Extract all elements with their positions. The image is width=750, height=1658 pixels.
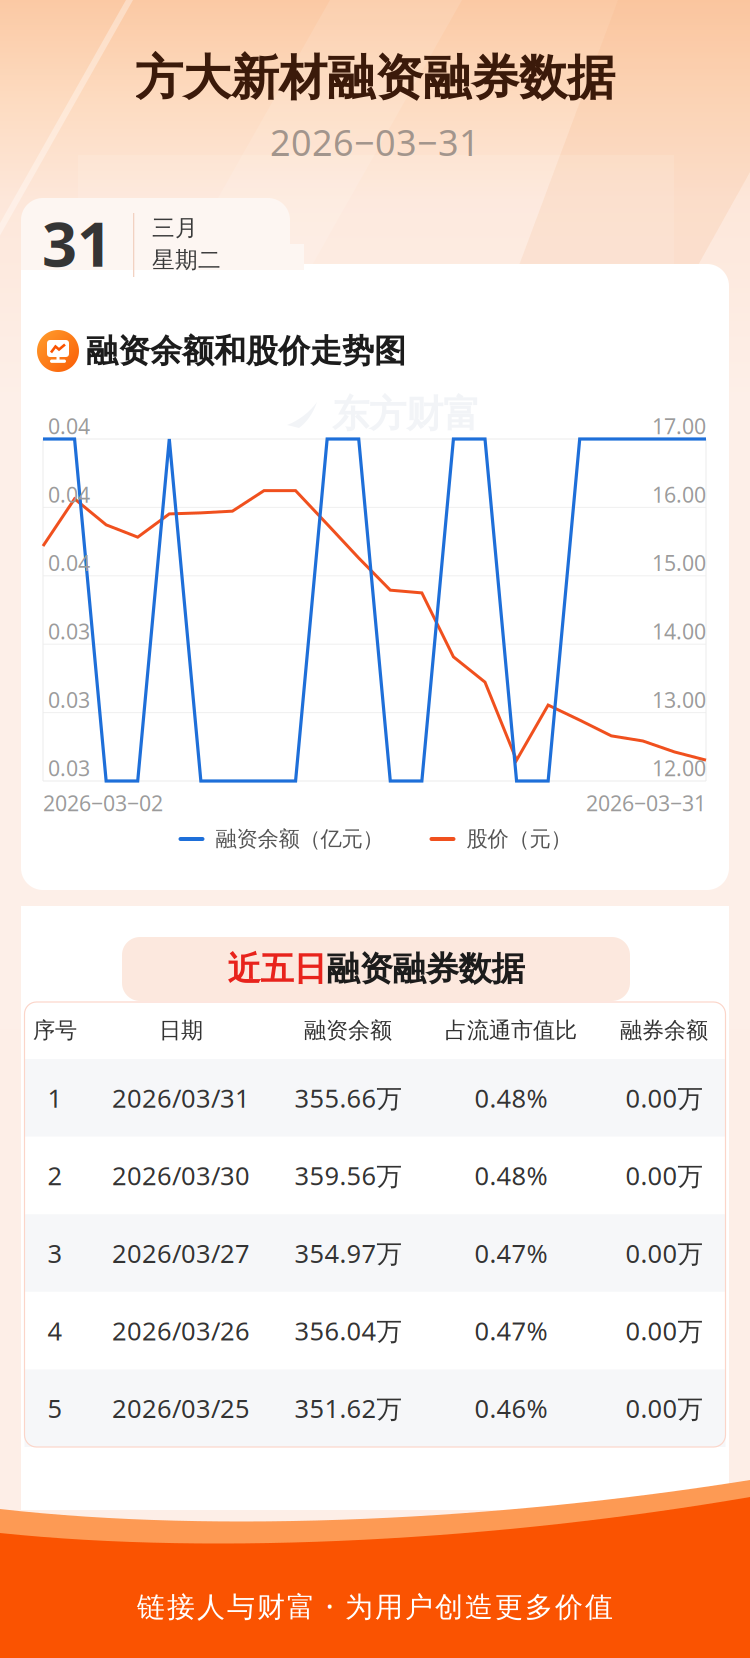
staticText: 0.00万 [625, 1236, 702, 1270]
staticText: 东方财富 [332, 391, 480, 437]
staticText: 0.03 [48, 617, 90, 645]
staticText: 2026/03/30 [112, 1158, 250, 1193]
staticText: 融资余额 [304, 1017, 392, 1044]
staticText: 融券余额 [620, 1017, 708, 1044]
staticText: 0.46% [474, 1391, 547, 1426]
staticText: 356.04万 [294, 1313, 401, 1348]
staticText: 0.03 [48, 754, 90, 782]
staticText: 2026/03/31 [112, 1080, 250, 1115]
staticText: 0.00万 [625, 1158, 702, 1193]
staticText: 2026−03−31 [270, 118, 480, 166]
staticText: 354.97万 [294, 1236, 401, 1270]
staticText: 13.00 [652, 685, 706, 714]
staticText: 2026/03/27 [112, 1236, 250, 1270]
staticText: 2026−03−31 [586, 789, 706, 817]
staticText: 0.48% [474, 1080, 547, 1115]
staticText: 0.04 [48, 480, 90, 508]
staticText: 12.00 [652, 754, 706, 782]
staticText: 0.48% [474, 1158, 547, 1193]
staticText: 0.00万 [625, 1391, 702, 1426]
staticText: 融资融券数据 [326, 948, 524, 989]
staticText: 融资余额和股价走势图 [86, 331, 406, 371]
staticText: 三月 [152, 214, 198, 242]
staticText: 14.00 [652, 617, 706, 645]
staticText: 2026/03/26 [112, 1313, 250, 1348]
staticText: 序号 [33, 1017, 77, 1044]
staticText: 东方财富 [322, 1218, 450, 1257]
staticText: 方大新材融资融券数据 [135, 48, 615, 107]
staticText: 16.00 [652, 480, 706, 508]
staticText: 链接人与财富 · 为用户创造更多价值 [137, 1587, 613, 1625]
staticText: 0.03 [48, 685, 90, 714]
staticText: 2026/03/25 [112, 1391, 250, 1426]
staticText: 股价（元） [466, 826, 571, 852]
staticText: 星期二 [152, 246, 221, 274]
staticText: 355.66万 [294, 1080, 401, 1115]
staticText: 359.56万 [294, 1158, 401, 1193]
staticText: 2026−03−02 [43, 789, 163, 817]
staticText: 0.00万 [625, 1313, 702, 1348]
staticText: 2 [47, 1158, 62, 1193]
staticText: 0.04 [48, 549, 90, 577]
staticText: 351.62万 [294, 1391, 401, 1426]
staticText: 5 [47, 1391, 62, 1426]
staticText: 4 [47, 1313, 62, 1348]
staticText: 15.00 [652, 549, 706, 577]
staticText: 占流通市值比 [445, 1017, 577, 1044]
staticText: 近五日 [227, 948, 326, 989]
staticText: 融资余额（亿元） [215, 826, 383, 852]
staticText: 0.47% [474, 1236, 547, 1270]
staticText: 0.04 [48, 412, 90, 440]
staticText: 17.00 [652, 412, 706, 440]
staticText: 0.47% [474, 1313, 547, 1348]
staticText: 日期 [159, 1017, 203, 1044]
staticText: 31 [42, 202, 112, 284]
staticText: 3 [47, 1236, 62, 1270]
staticText: 1 [47, 1080, 62, 1115]
staticText: 0.00万 [625, 1080, 702, 1115]
